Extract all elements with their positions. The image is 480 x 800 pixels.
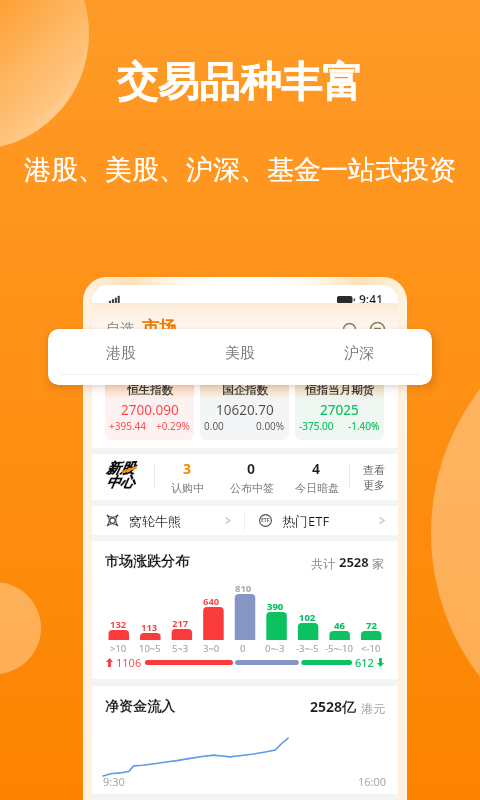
staticText: 16:00 [358, 774, 387, 789]
staticText: 热门ETF [282, 512, 330, 530]
staticText: 自选 [106, 320, 134, 338]
staticText: 10~5 [139, 642, 161, 655]
button[interactable]: Search [341, 322, 358, 339]
staticText: 窝轮牛熊 [129, 513, 181, 529]
staticText: +0.29% [156, 419, 190, 433]
staticText: 3 [183, 459, 192, 478]
staticText: 612 [355, 655, 374, 670]
staticText: 中心 [106, 474, 134, 492]
staticText: 港元 [361, 701, 385, 716]
staticText: 恒指当月期货 [305, 383, 374, 397]
staticText: 恒生指数 [127, 383, 173, 397]
staticText: 港股 [106, 344, 136, 363]
button[interactable]: 新股 [92, 454, 398, 500]
button[interactable]: 国企指数 [200, 367, 289, 440]
button[interactable]: 市场 [142, 317, 176, 338]
staticText: 102 [299, 611, 316, 624]
staticText: 3~0 [203, 642, 220, 655]
staticText: 国企指数 [222, 383, 268, 397]
staticText: 沪深 [344, 344, 374, 363]
button[interactable]: 自选 [106, 320, 134, 338]
staticText: +395.44 [109, 419, 146, 433]
staticText: >10 [110, 642, 127, 655]
staticText: 640 [203, 595, 220, 608]
staticText: 市场 [142, 317, 176, 338]
button[interactable]: ETF [245, 506, 398, 535]
staticText: 0 [240, 642, 246, 655]
staticText: 113 [141, 621, 158, 634]
button[interactable]: 恒生指数 [105, 367, 194, 440]
staticText: 0 [247, 459, 256, 478]
staticText: 10620.70 [216, 401, 274, 419]
staticText: 46 [334, 619, 345, 632]
staticText: 市场涨跌分布 [105, 553, 189, 571]
staticText: -5~-10 [325, 642, 353, 655]
button[interactable]: 窝轮牛熊 [92, 506, 244, 535]
button[interactable]: Account [369, 322, 386, 339]
staticText: 0~-3 [265, 642, 285, 655]
staticText: 5~3 [172, 642, 189, 655]
staticText: 2528亿 [310, 697, 357, 716]
staticText: -1.40% [348, 419, 380, 433]
staticText: 今日暗盘 [295, 481, 339, 495]
staticText: 2528 [339, 553, 369, 571]
staticText: 9:30 [103, 774, 125, 789]
staticText: -375.00 [299, 419, 334, 433]
staticText: 4 [312, 459, 321, 478]
staticText: 净资金流入 [105, 698, 175, 716]
button[interactable]: 港股 [62, 329, 180, 385]
staticText: 9:41 [359, 291, 383, 307]
staticText: 72 [366, 619, 377, 632]
button[interactable]: 恒指当月期货 [295, 367, 384, 440]
staticText: 27025 [320, 401, 359, 419]
staticText: -3~-5 [296, 642, 319, 655]
button[interactable]: 沪深 [299, 329, 418, 385]
staticText: 390 [267, 600, 284, 613]
button[interactable]: 美股 [180, 329, 299, 385]
staticText: 交易品种丰富 [0, 57, 480, 109]
staticText: 810 [235, 582, 252, 595]
staticText: 家 [369, 555, 385, 571]
staticText: 2700.090 [121, 401, 179, 419]
staticText: 公布中签 [230, 481, 274, 495]
staticText: 新股 [106, 460, 134, 478]
staticText: 美股 [225, 344, 255, 363]
staticText: 港股、美股、沪深、基金一站式投资 [0, 153, 480, 187]
staticText: 共计 [311, 555, 339, 571]
staticText: 查看 [363, 463, 385, 477]
staticText: 1106 [116, 655, 142, 670]
staticText: 认购中 [171, 481, 204, 495]
staticText: 132 [110, 618, 127, 631]
staticText: <-10 [361, 642, 381, 655]
staticText: 更多 [363, 478, 385, 492]
staticText: 217 [172, 617, 189, 630]
staticText: ETF [261, 517, 270, 524]
staticText: 0.00% [256, 419, 285, 433]
staticText: 0.00 [204, 419, 224, 433]
